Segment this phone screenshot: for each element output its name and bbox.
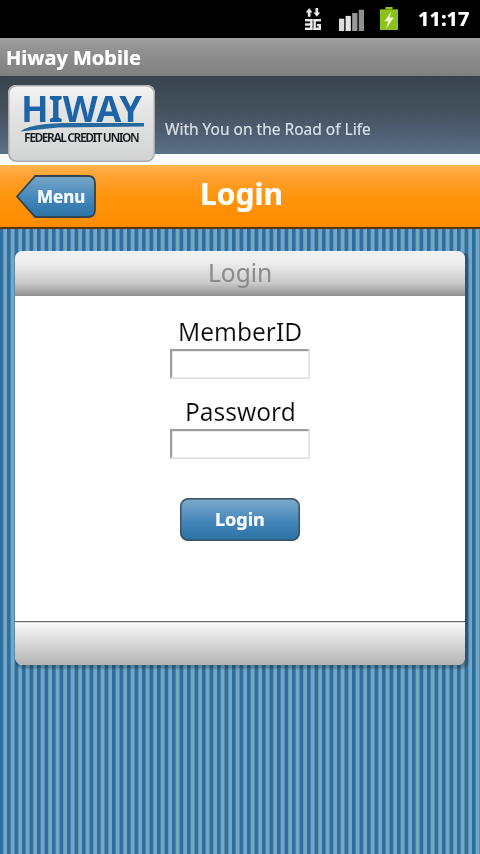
other: Signal strength	[339, 9, 364, 31]
staticText: Menu	[37, 185, 86, 208]
button[interactable]: Login	[180, 498, 300, 541]
staticText: FEDERAL CREDIT UNION	[24, 129, 139, 145]
staticText: Login	[208, 256, 273, 289]
staticText: Login	[215, 507, 265, 532]
other: Battery charging	[380, 7, 398, 30]
staticText: Hiway Mobile	[6, 44, 141, 71]
staticText: 11:17	[418, 5, 470, 32]
staticText: Login	[200, 173, 283, 214]
staticText: Password	[185, 395, 296, 428]
button[interactable]	[170, 349, 310, 379]
button[interactable]: HIWAY	[8, 85, 155, 162]
staticText: HIWAY	[21, 85, 142, 132]
staticText: With You on the Road of Life	[165, 118, 371, 139]
staticText: MemberID	[178, 315, 303, 348]
button[interactable]: Menu	[16, 175, 96, 218]
other: 3G network	[305, 8, 321, 30]
button[interactable]	[170, 429, 310, 459]
